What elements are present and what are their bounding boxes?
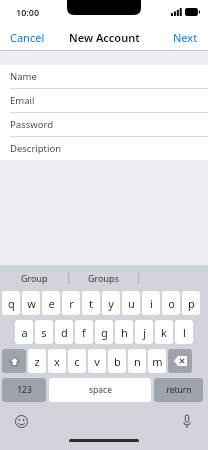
staticText: Name [10, 70, 37, 83]
button[interactable]: l [175, 320, 193, 344]
button[interactable]: r [62, 291, 80, 315]
staticText: t [89, 296, 93, 311]
staticText: w [27, 296, 36, 311]
staticText: space [89, 384, 112, 396]
button[interactable]: w [22, 291, 40, 315]
button[interactable]: m [148, 349, 166, 373]
button[interactable]: Groups [69, 265, 138, 291]
button[interactable]: i [142, 291, 160, 315]
button[interactable]: e [42, 291, 60, 315]
button[interactable]: x [48, 349, 66, 373]
button[interactable]: Next [163, 26, 208, 49]
button[interactable]: t [82, 291, 100, 315]
staticText: r [69, 296, 74, 311]
staticText: v [94, 354, 100, 369]
button[interactable]: c [68, 349, 86, 373]
button[interactable]: Cancel [0, 26, 55, 49]
staticText: x [54, 354, 60, 369]
button[interactable]: v [88, 349, 106, 373]
staticText: u [128, 296, 135, 311]
staticText: Cancel [10, 30, 45, 45]
button[interactable]: z [28, 349, 46, 373]
staticText: 10:00 [16, 6, 40, 18]
staticText: e [48, 296, 55, 311]
staticText: n [134, 354, 141, 369]
staticText: o [168, 296, 175, 311]
staticText: q [8, 296, 15, 311]
button[interactable]: b [108, 349, 126, 373]
button[interactable]: h [115, 320, 133, 344]
button[interactable]: Description [0, 137, 208, 160]
staticText: s [41, 325, 47, 340]
button[interactable]: 123 [2, 378, 46, 402]
staticText: c [74, 354, 80, 369]
staticText: p [188, 296, 195, 311]
button[interactable]: Emoji [12, 412, 30, 430]
button[interactable]: j [135, 320, 153, 344]
button[interactable]: n [128, 349, 146, 373]
staticText: d [61, 325, 68, 340]
button[interactable]: k [155, 320, 173, 344]
button[interactable]: Name [0, 65, 208, 89]
staticText: a [21, 325, 28, 340]
button[interactable]: return [154, 378, 203, 402]
button[interactable]: g [95, 320, 113, 344]
staticText: g [101, 325, 108, 340]
button[interactable]: Password [0, 113, 208, 137]
button[interactable]: f [75, 320, 93, 344]
staticText: b [114, 354, 121, 369]
button[interactable]: u [122, 291, 140, 315]
staticText: k [161, 325, 167, 340]
button[interactable]: Email [0, 89, 208, 113]
staticText: l [183, 325, 186, 340]
button[interactable]: q [2, 291, 20, 315]
staticText: y [108, 296, 114, 311]
staticText: Group [21, 272, 48, 284]
button[interactable]: space [49, 378, 151, 402]
button[interactable]: o [162, 291, 180, 315]
staticText: New Account [69, 30, 140, 45]
staticText: Groups [88, 272, 119, 284]
staticText: Password [10, 118, 53, 131]
staticText: z [34, 354, 40, 369]
button[interactable]: p [182, 291, 200, 315]
staticText: m [152, 354, 163, 369]
staticText: 123 [17, 384, 32, 396]
staticText: return [166, 384, 192, 396]
staticText: j [143, 325, 146, 340]
staticText: f [82, 325, 86, 340]
button[interactable]: Dictation [178, 412, 196, 430]
button[interactable]: a [15, 320, 33, 344]
staticText: Description [10, 142, 62, 155]
staticText: Email [10, 94, 35, 107]
button[interactable]: Backspace [168, 349, 192, 373]
staticText: i [150, 296, 153, 311]
button[interactable]: Group [0, 265, 68, 291]
button[interactable]: d [55, 320, 73, 344]
button[interactable]: Shift [2, 349, 26, 373]
button[interactable]: s [35, 320, 53, 344]
staticText: Next [173, 30, 198, 45]
button[interactable]: y [102, 291, 120, 315]
staticText: h [121, 325, 128, 340]
